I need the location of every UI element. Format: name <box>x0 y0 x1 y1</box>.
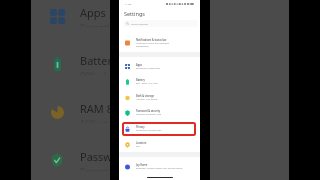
staticText: Batter <box>80 53 110 68</box>
staticText: Notifications & status bar <box>136 38 167 41</box>
staticText: Notification history and notification ma… <box>136 42 170 48</box>
staticText: Location <box>136 141 147 144</box>
staticText: Settings <box>124 10 145 17</box>
staticText: Joy Home <box>136 163 148 166</box>
staticText: Apps <box>80 5 106 20</box>
button[interactable]: Privacy <box>125 121 197 136</box>
staticText: Privacy <box>136 125 145 128</box>
staticText: 98% - about 1 d 4 h left <box>136 82 158 85</box>
staticText: Password, fingerprint, face <box>136 113 162 116</box>
button[interactable]: Passw <box>31 149 110 171</box>
button[interactable]: Search settings <box>123 20 198 27</box>
staticText: 128 used - 4.75 gb free <box>136 98 158 101</box>
staticText: 11:06 <box>125 2 132 5</box>
staticText: Both & storage <box>136 94 154 97</box>
button[interactable]: Notifications & status bar <box>125 34 197 51</box>
button[interactable]: Batter <box>31 53 110 75</box>
staticText: Password & security <box>136 109 161 112</box>
staticText: Brightness, dynamic refresh rate, pro te… <box>136 167 183 170</box>
button[interactable]: Location <box>125 137 197 152</box>
staticText: Recently <box>80 22 110 27</box>
button[interactable]: Battery <box>125 74 197 89</box>
staticText: Search settings <box>131 22 149 25</box>
button[interactable]: Apps <box>31 5 110 27</box>
button[interactable]: Password & security <box>125 105 197 120</box>
staticText: Permissions, personal data <box>136 129 162 132</box>
button[interactable]: Joy Home <box>125 159 197 174</box>
staticText: Passwo <box>80 166 110 171</box>
staticText: Apps <box>136 63 142 66</box>
staticText: Battery <box>136 78 145 81</box>
staticText: Permissions, default apps <box>136 67 161 70</box>
button[interactable]: Both & storage <box>125 90 197 105</box>
staticText: Passw <box>80 149 110 164</box>
staticText: GPS <box>136 145 140 148</box>
button[interactable]: RAM 8 <box>31 101 110 123</box>
staticText: RAM 8 <box>80 101 110 116</box>
button[interactable]: Apps <box>125 59 197 74</box>
